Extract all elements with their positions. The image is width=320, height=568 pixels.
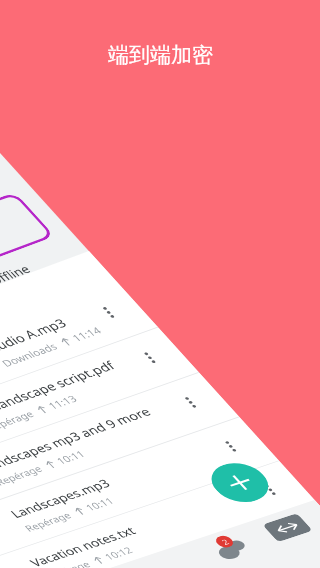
staticText: Downloads (0, 340, 60, 369)
other: More options (176, 393, 205, 412)
staticText: 端到端加密 (108, 42, 213, 68)
other: More options (135, 348, 164, 367)
button[interactable]: Videos (0, 192, 55, 271)
button[interactable]: Add (200, 457, 279, 508)
staticText: Repérage (0, 408, 36, 433)
staticText: 11:13 (45, 392, 80, 412)
button[interactable]: Landscapes.mp3 (0, 416, 279, 559)
other: More options (217, 437, 245, 456)
staticText: Repérage (21, 509, 74, 534)
staticText: 10:11 (82, 494, 117, 513)
button[interactable]: Big landscape script.pdf (0, 327, 198, 475)
staticText: Videos (0, 239, 1, 264)
other: More options (94, 303, 123, 322)
button[interactable]: Audio A.mp3 (0, 281, 158, 432)
other: More options (256, 481, 284, 499)
button[interactable]: Resize (262, 513, 313, 542)
staticText: 10:12 (101, 544, 135, 562)
staticText: 10:11 (53, 448, 88, 466)
staticText: Offline (0, 261, 34, 288)
staticText: Big landscape script.pdf (0, 357, 118, 420)
staticText: Landscapes.mp3 (6, 475, 114, 521)
staticText: Repérage (0, 462, 45, 488)
staticText: Repérage (41, 558, 93, 568)
staticText: 11:14 (69, 324, 104, 344)
staticText: 2 (219, 537, 232, 547)
button[interactable]: Vacation notes.txt (0, 460, 318, 568)
staticText: Landscapes mp3 and 9 more (0, 404, 154, 474)
button[interactable]: Landscapes mp3 and 9 more (0, 372, 239, 518)
staticText: Audio A.mp3 (0, 315, 70, 355)
staticText: Vacation notes.txt (26, 523, 139, 568)
button[interactable]: Chat (202, 529, 263, 568)
